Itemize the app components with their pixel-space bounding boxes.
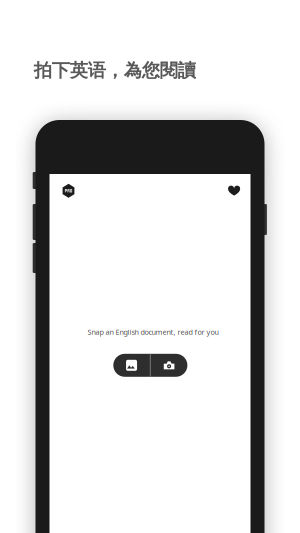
button[interactable]: Take a photo [151, 354, 187, 377]
button[interactable]: Favourites [222, 180, 246, 202]
staticText: 拍下英语，為您閱讀 [34, 59, 196, 82]
button[interactable]: Pro [56, 180, 80, 202]
button[interactable]: Choose from library [113, 354, 150, 377]
staticText: Snap an English document, read for you [87, 327, 218, 337]
